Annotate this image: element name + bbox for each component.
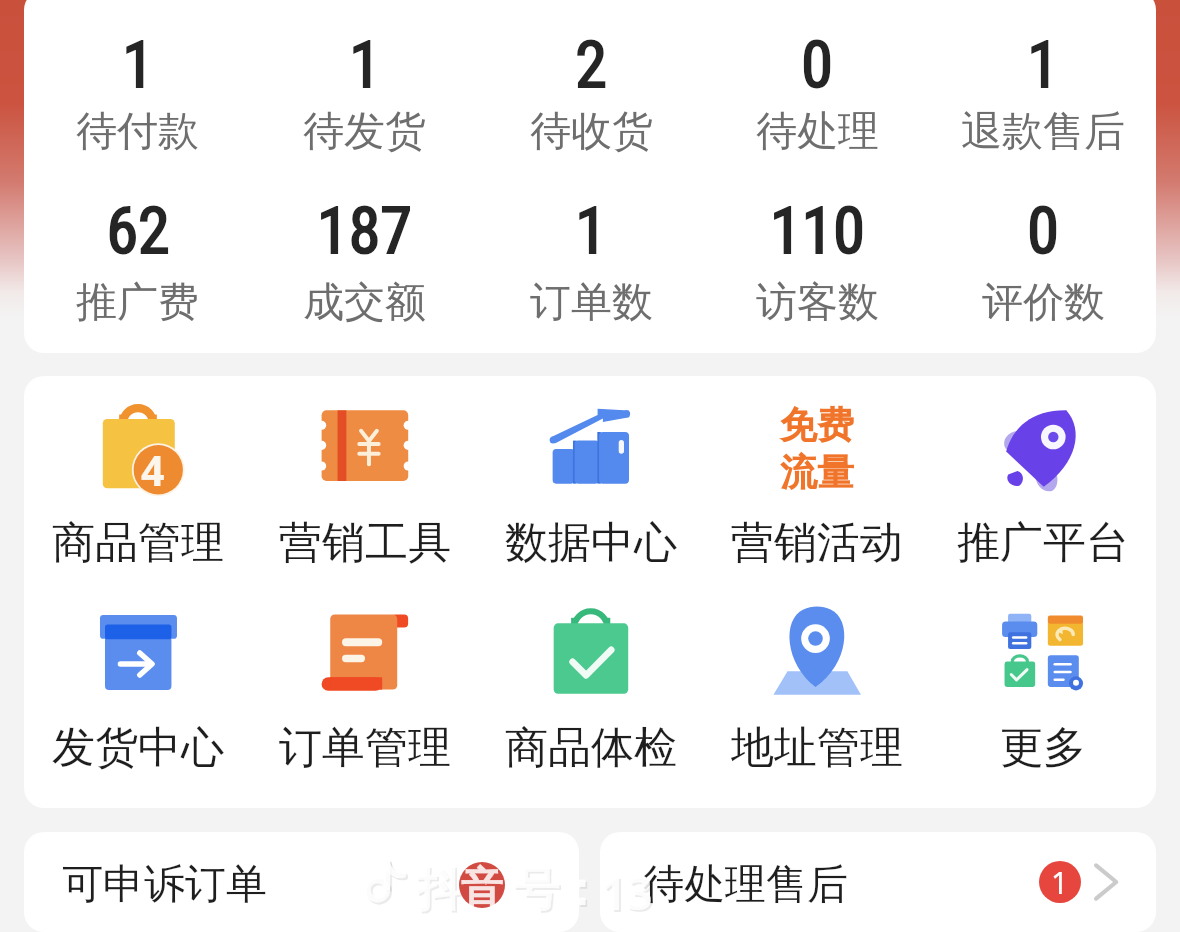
button[interactable]: 110 <box>704 194 930 353</box>
staticText: 评价数 <box>982 277 1105 329</box>
button[interactable]: 商品管理 <box>24 404 251 604</box>
button[interactable]: 营销活动 <box>704 404 930 604</box>
staticText: 13 <box>602 863 655 926</box>
button[interactable]: 0 <box>704 28 930 188</box>
staticText: 1 <box>122 28 154 103</box>
button[interactable]: 推广平台 <box>930 404 1156 604</box>
staticText: 商品管理 <box>52 516 224 570</box>
button[interactable]: 187 <box>251 194 478 353</box>
button[interactable]: 数据中心 <box>478 404 704 604</box>
staticText: 0 <box>801 28 833 103</box>
staticText: 流量 <box>780 449 854 490</box>
button[interactable]: 0 <box>930 194 1156 353</box>
staticText: 待发货 <box>303 106 426 158</box>
staticText: 成交额 <box>303 277 426 329</box>
staticText: 待处理售后 <box>643 859 848 911</box>
button[interactable]: 62 <box>24 194 251 353</box>
staticText: 访客数 <box>756 277 879 329</box>
staticText: 187 <box>317 194 412 269</box>
staticText: 0 <box>1027 194 1059 269</box>
staticText: 抖 <box>416 861 462 919</box>
staticText: 4 <box>141 442 165 498</box>
staticText: 13 <box>600 861 653 924</box>
staticText: 110 <box>770 194 865 269</box>
staticText: 号 <box>513 861 559 919</box>
staticText: 号 <box>515 863 561 921</box>
staticText: 推广平台 <box>957 516 1129 570</box>
staticText: 抖 <box>418 863 464 921</box>
staticText: 待处理 <box>756 106 879 158</box>
staticText: 待收货 <box>530 106 653 158</box>
button[interactable]: 待处理售后 <box>600 832 1156 932</box>
staticText: 更多 <box>1000 721 1086 775</box>
staticText: 发货中心 <box>52 721 224 775</box>
staticText: 地址管理 <box>731 721 903 775</box>
staticText: 数据中心 <box>505 516 677 570</box>
staticText: ： <box>558 861 604 919</box>
button[interactable]: 1 <box>930 28 1156 188</box>
button[interactable]: 商品体检 <box>478 609 704 808</box>
staticText: 1 <box>575 194 607 269</box>
button[interactable]: 1 <box>24 28 251 188</box>
staticText: 音 <box>461 862 503 915</box>
staticText: 退款售后 <box>961 106 1125 158</box>
button[interactable]: 更多 <box>930 609 1156 808</box>
button[interactable]: 1 <box>478 194 704 353</box>
button[interactable]: 1 <box>251 28 478 188</box>
staticText: 1 <box>349 28 381 103</box>
staticText: 推广费 <box>76 277 199 329</box>
staticText: 商品体检 <box>505 721 677 775</box>
staticText: 可申诉订单 <box>62 859 267 911</box>
button[interactable]: 订单管理 <box>251 609 478 808</box>
staticText: 2 <box>575 28 607 103</box>
staticText: 营销工具 <box>279 516 451 570</box>
staticText: 62 <box>106 194 170 269</box>
staticText: 1 <box>1051 862 1069 903</box>
staticText: 1 <box>1027 28 1059 103</box>
button[interactable]: 营销工具 <box>251 404 478 604</box>
staticText: 待付款 <box>76 106 199 158</box>
staticText: 免费 <box>780 402 854 449</box>
button[interactable]: 地址管理 <box>704 609 930 808</box>
button[interactable]: 可申诉订单 <box>24 832 579 932</box>
staticText: 订单数 <box>530 277 653 329</box>
staticText: 营销活动 <box>731 516 903 570</box>
button[interactable]: 发货中心 <box>24 609 251 808</box>
staticText: ： <box>560 863 606 921</box>
staticText: 订单管理 <box>279 721 451 775</box>
button[interactable]: 2 <box>478 28 704 188</box>
